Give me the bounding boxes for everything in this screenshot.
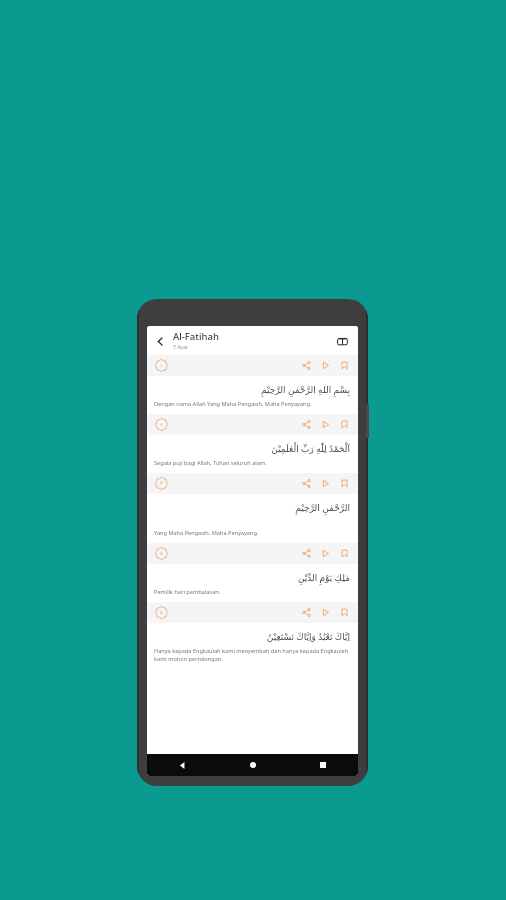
staticText: 7 Ayat (173, 344, 188, 351)
button[interactable]: Back (152, 333, 168, 349)
staticText: Segala puji bagi Allah, Tuhan seluruh al… (154, 459, 267, 467)
staticText: الرَّحْمٰنِ الرَّحِيْمِ (295, 501, 350, 513)
staticText: اَلْحَمْدُ لِلّٰهِ رَبِّ الْعٰلَمِيْنَ (271, 442, 350, 454)
button[interactable]: Ayat ٣ (154, 476, 169, 491)
button[interactable]: Ayat ٤ (154, 546, 169, 561)
staticText: ٤ (160, 551, 163, 556)
staticText: ٥ (160, 610, 163, 615)
staticText: Hanya kepada Engkaulah kami menyembah da… (154, 647, 349, 663)
staticText: بِسْمِ اللهِ الرَّحْمٰنِ الرَّحِيْمِ (261, 383, 350, 395)
button[interactable]: Bookmark (338, 606, 351, 619)
button[interactable]: Ayat ٥ (154, 605, 169, 620)
staticText: اِيَّاكَ نَعْبُدُ وَاِيَّاكَ نَسْتَعِيْن… (266, 630, 350, 642)
button[interactable]: Recent apps (288, 754, 358, 776)
button[interactable]: Share (300, 359, 313, 372)
button[interactable]: Bookmark (338, 547, 351, 560)
staticText: ٢ (160, 422, 163, 427)
button[interactable]: Play (319, 547, 332, 560)
staticText: ١ (160, 363, 163, 368)
button[interactable]: Play (319, 418, 332, 431)
staticText: Yang Maha Pengasih, Maha Penyayang. (154, 529, 259, 537)
staticText: Al-Fatihah (173, 330, 219, 343)
button[interactable]: Bookmark (338, 418, 351, 431)
button[interactable]: Play (319, 477, 332, 490)
button[interactable]: Play (319, 606, 332, 619)
staticText: Dengan nama Allah Yang Maha Pengasih, Ma… (154, 400, 312, 408)
button[interactable]: Bookmark (338, 477, 351, 490)
button[interactable]: Ayat ١ (154, 358, 169, 373)
staticText: ٣ (160, 481, 163, 486)
button[interactable]: Ayat ٢ (154, 417, 169, 432)
button[interactable]: Reading mode (333, 332, 351, 350)
staticText: Pemilik hari pembalasan. (154, 588, 221, 596)
button[interactable]: Back (147, 754, 218, 776)
button[interactable]: Play (319, 359, 332, 372)
button[interactable]: Share (300, 547, 313, 560)
button[interactable]: Share (300, 606, 313, 619)
button[interactable]: Share (300, 418, 313, 431)
button[interactable]: Bookmark (338, 359, 351, 372)
button[interactable]: Share (300, 477, 313, 490)
staticText: مٰلِكِ يَوْمِ الدِّيْنِ (297, 571, 350, 583)
button[interactable]: Home (218, 754, 288, 776)
